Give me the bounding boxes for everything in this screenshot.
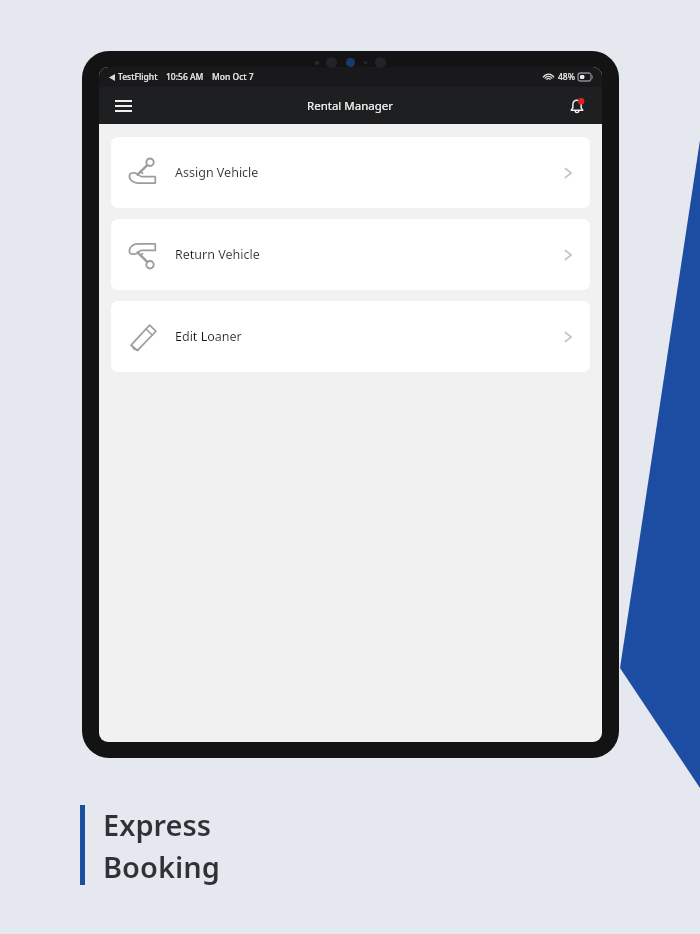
staticText: 48% [558, 71, 575, 83]
staticText: Edit Loaner [175, 328, 242, 345]
button[interactable]: Assign Vehicle [111, 137, 590, 208]
staticText: Mon Oct 7 [212, 71, 254, 83]
staticText: Rental Manager [307, 98, 394, 114]
staticText: Return Vehicle [175, 246, 260, 263]
staticText: Assign Vehicle [175, 164, 259, 181]
staticText: Booking [103, 847, 220, 886]
button[interactable]: Return Vehicle [111, 219, 590, 290]
button[interactable]: Open navigation menu [109, 92, 137, 120]
staticText: Express [103, 805, 212, 844]
button[interactable]: Edit Loaner [111, 301, 590, 372]
staticText: TestFlight [118, 71, 158, 83]
staticText: 10:56 AM [166, 71, 204, 83]
button[interactable]: Notifications [563, 92, 591, 120]
